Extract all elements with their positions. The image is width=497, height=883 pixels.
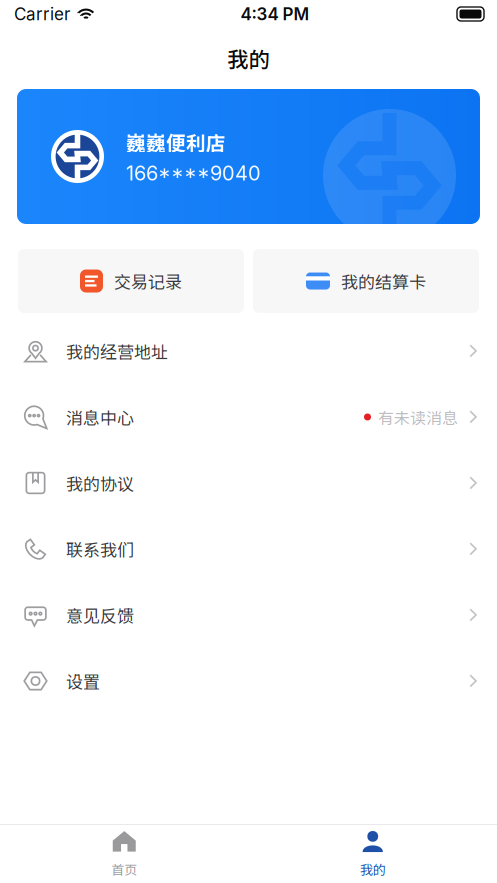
staticText: 设置 bbox=[66, 669, 100, 693]
button[interactable]: 我的 bbox=[248, 825, 497, 883]
staticText: 我的协议 bbox=[66, 471, 134, 495]
staticText: 联系我们 bbox=[66, 537, 134, 561]
button[interactable]: 我的结算卡 bbox=[253, 249, 479, 313]
staticText: 4:34 PM bbox=[240, 4, 309, 24]
button[interactable]: 首页 bbox=[0, 825, 248, 883]
button[interactable]: 意见反馈 bbox=[0, 582, 497, 648]
staticText: 我的结算卡 bbox=[341, 269, 426, 293]
button[interactable]: 我的协议 bbox=[0, 450, 497, 516]
button[interactable]: 消息中心 bbox=[0, 384, 497, 450]
staticText: 我的 bbox=[360, 860, 386, 878]
staticText: 我的 bbox=[227, 43, 269, 73]
staticText: 首页 bbox=[111, 860, 137, 878]
staticText: 交易记录 bbox=[114, 269, 182, 293]
staticText: Carrier bbox=[14, 4, 70, 24]
button[interactable]: 我的经营地址 bbox=[0, 318, 497, 384]
staticText: 有未读消息 bbox=[378, 405, 458, 429]
button[interactable]: 设置 bbox=[0, 648, 497, 714]
button[interactable]: 交易记录 bbox=[18, 249, 244, 313]
staticText: 意见反馈 bbox=[66, 603, 134, 627]
button[interactable]: 联系我们 bbox=[0, 516, 497, 582]
staticText: 166****9040 bbox=[126, 161, 261, 185]
staticText: 巍巍便利店 bbox=[126, 128, 226, 156]
staticText: 消息中心 bbox=[66, 405, 134, 429]
staticText: 我的经营地址 bbox=[66, 339, 168, 363]
